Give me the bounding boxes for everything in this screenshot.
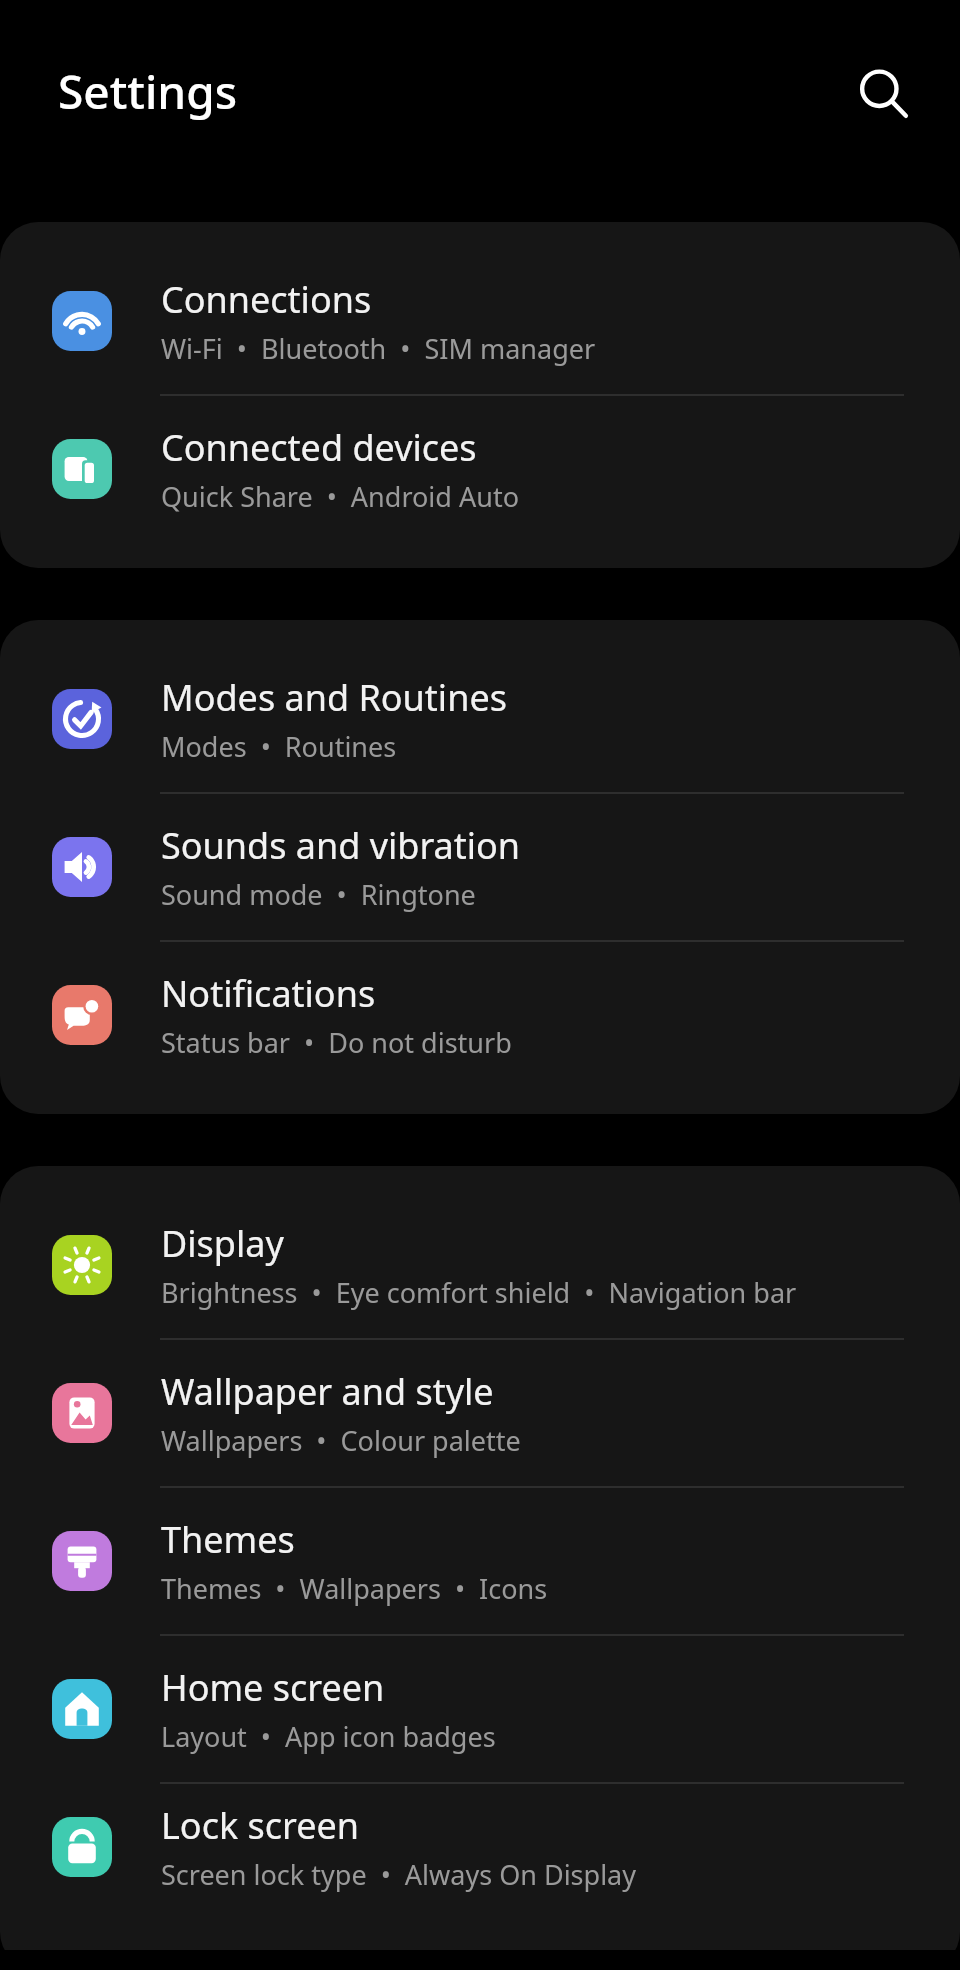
- button[interactable]: Connections: [0, 248, 960, 394]
- button[interactable]: Lock screen: [0, 1784, 960, 1910]
- button[interactable]: Sounds and vibration: [0, 794, 960, 940]
- staticText: Wallpapers • Colour palette: [161, 1422, 521, 1459]
- staticText: Display: [161, 1219, 284, 1268]
- button[interactable]: Modes and Routines: [0, 646, 960, 792]
- staticText: Modes and Routines: [161, 673, 507, 722]
- staticText: Quick Share • Android Auto: [161, 478, 519, 515]
- staticText: Sound mode • Ringtone: [161, 876, 476, 913]
- button[interactable]: Search settings: [836, 46, 932, 142]
- button[interactable]: Wallpaper and style: [0, 1340, 960, 1486]
- staticText: Screen lock type • Always On Display: [161, 1856, 637, 1893]
- staticText: Status bar • Do not disturb: [161, 1024, 512, 1061]
- staticText: Layout • App icon badges: [161, 1718, 496, 1755]
- staticText: Brightness • Eye comfort shield • Naviga…: [161, 1274, 797, 1311]
- staticText: Wi-Fi • Bluetooth • SIM manager: [161, 330, 596, 367]
- button[interactable]: Notifications: [0, 942, 960, 1088]
- staticText: Notifications: [161, 969, 376, 1018]
- staticText: Lock screen: [161, 1801, 360, 1850]
- staticText: Home screen: [161, 1663, 385, 1712]
- staticText: Settings: [58, 60, 238, 123]
- staticText: Sounds and vibration: [161, 821, 521, 870]
- button[interactable]: Connected devices: [0, 396, 960, 542]
- button[interactable]: Display: [0, 1192, 960, 1338]
- staticText: Wallpaper and style: [161, 1367, 494, 1416]
- staticText: Connected devices: [161, 423, 477, 472]
- button[interactable]: Themes: [0, 1488, 960, 1634]
- staticText: Modes • Routines: [161, 728, 397, 765]
- staticText: Connections: [161, 275, 372, 324]
- staticText: Themes • Wallpapers • Icons: [161, 1570, 548, 1607]
- staticText: Themes: [161, 1515, 295, 1564]
- button[interactable]: Home screen: [0, 1636, 960, 1782]
